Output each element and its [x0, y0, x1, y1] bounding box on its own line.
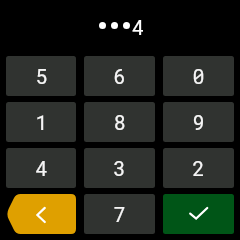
staticText: 1 [35, 109, 48, 135]
staticText: 8 [113, 109, 126, 135]
button[interactable]: 3 [84, 148, 155, 188]
button[interactable]: 7 [84, 194, 155, 234]
staticText: 9 [192, 109, 205, 135]
button[interactable]: 8 [84, 102, 155, 142]
staticText: 7 [113, 201, 126, 227]
staticText: 4 [132, 14, 145, 40]
button[interactable]: 1 [6, 102, 76, 142]
button[interactable]: 0 [163, 56, 234, 96]
staticText: 3 [113, 155, 126, 181]
button[interactable]: 4 [6, 148, 76, 188]
staticText: 2 [192, 155, 205, 181]
staticText: 5 [35, 63, 48, 89]
staticText: 4 [35, 155, 48, 181]
button[interactable]: 5 [6, 56, 76, 96]
button[interactable]: Confirm [163, 194, 234, 234]
button[interactable]: 9 [163, 102, 234, 142]
staticText: 0 [192, 63, 205, 89]
button[interactable]: 6 [84, 56, 155, 96]
staticText: 6 [113, 63, 126, 89]
button[interactable]: Back [6, 194, 76, 234]
button[interactable]: 2 [163, 148, 234, 188]
